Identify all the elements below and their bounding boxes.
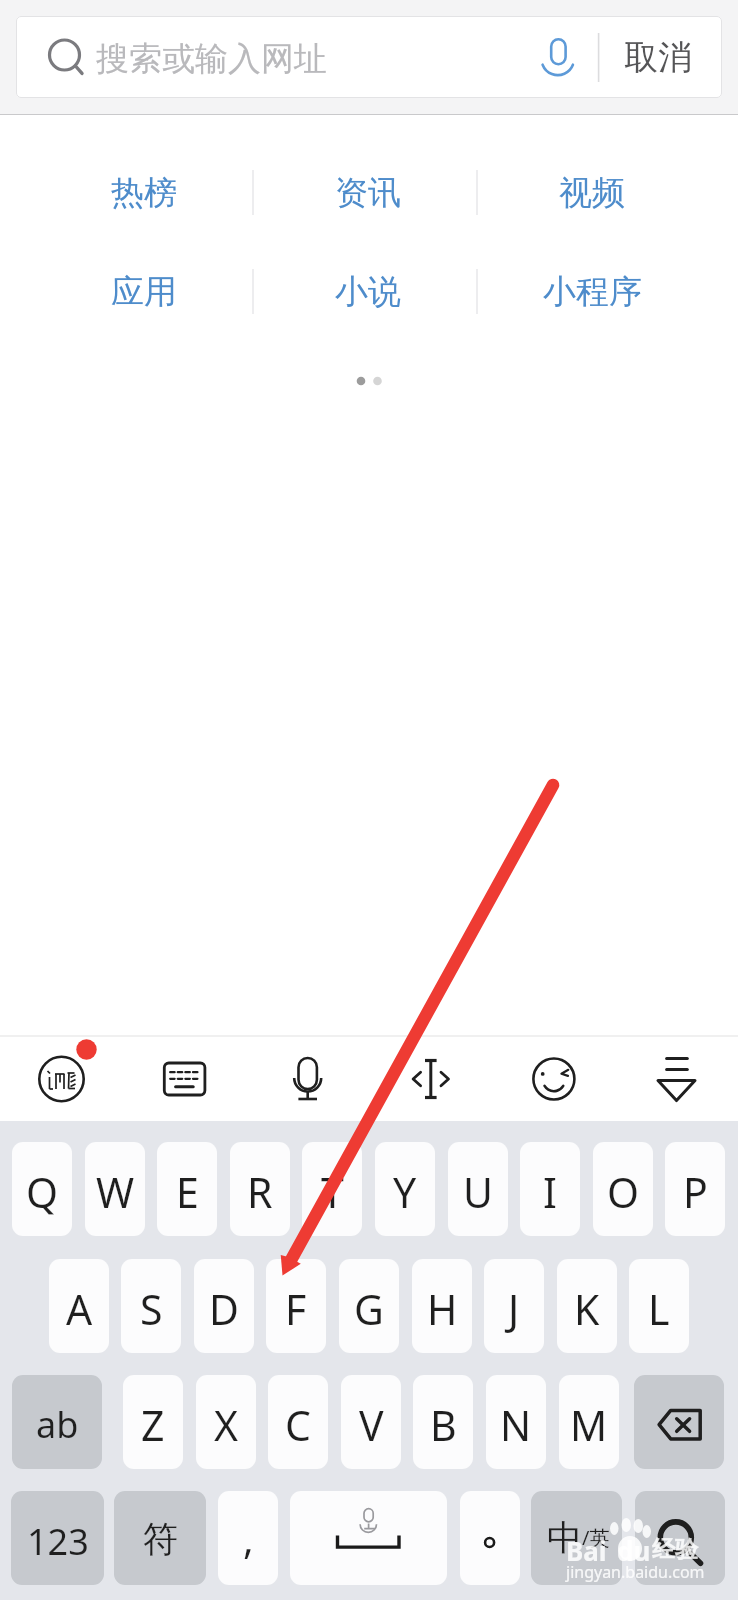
button[interactable]: Z xyxy=(123,1375,183,1469)
button[interactable]: W xyxy=(85,1142,145,1236)
button[interactable]: I xyxy=(520,1142,580,1236)
staticText: X xyxy=(214,1397,239,1453)
button[interactable]: L xyxy=(629,1259,689,1353)
button[interactable]: ab xyxy=(12,1375,102,1469)
staticText: L xyxy=(648,1281,670,1337)
button[interactable]: Q xyxy=(12,1142,72,1236)
button[interactable]: Keyboard xyxy=(143,1038,227,1120)
staticText: /英 xyxy=(582,1524,610,1551)
staticText: 热榜 xyxy=(111,172,177,214)
button[interactable]: K xyxy=(557,1259,617,1353)
staticText: R xyxy=(247,1164,273,1220)
button[interactable]: J xyxy=(484,1259,544,1353)
staticText: 取消 xyxy=(624,36,692,79)
button[interactable]: S xyxy=(121,1259,181,1353)
staticText: H xyxy=(427,1281,458,1337)
button[interactable]: 搜索或输入网址 xyxy=(16,16,722,98)
staticText: jingyan.baidu.com xyxy=(566,1561,705,1583)
button[interactable]: F xyxy=(266,1259,326,1353)
button[interactable]: Hide keyboard xyxy=(635,1038,719,1120)
staticText: 中 xyxy=(547,1516,582,1560)
button[interactable]: Y xyxy=(375,1142,435,1236)
staticText: F xyxy=(285,1281,307,1337)
button[interactable]: 视频 xyxy=(480,162,704,224)
button[interactable]: H xyxy=(412,1259,472,1353)
button[interactable]: 取消 xyxy=(599,16,716,98)
staticText: 应用 xyxy=(111,271,177,313)
staticText: ab xyxy=(36,1400,79,1449)
staticText: D xyxy=(209,1281,239,1337)
button[interactable]: T xyxy=(302,1142,362,1236)
staticText: A xyxy=(66,1281,93,1337)
button[interactable]: Search xyxy=(635,1491,725,1585)
button[interactable]: U xyxy=(448,1142,508,1236)
staticText: N xyxy=(500,1397,532,1453)
button[interactable]: 资讯 xyxy=(256,162,480,224)
button[interactable]: N xyxy=(486,1375,546,1469)
button[interactable]: Voice input xyxy=(266,1038,350,1120)
staticText: 经验 xyxy=(652,1535,698,1564)
staticText: 搜索或输入网址 xyxy=(96,38,327,80)
staticText: K xyxy=(574,1281,600,1337)
staticText: Q xyxy=(26,1164,59,1220)
staticText: M xyxy=(570,1397,608,1453)
button[interactable]: Voice search xyxy=(524,16,592,98)
staticText: W xyxy=(96,1164,135,1220)
staticText: T xyxy=(321,1164,344,1220)
button[interactable]: 小程序 xyxy=(480,261,704,323)
button[interactable]: 符 xyxy=(114,1491,206,1585)
staticText: 视频 xyxy=(559,172,625,214)
button[interactable]: P xyxy=(665,1142,725,1236)
button[interactable]: , xyxy=(218,1491,278,1585)
button[interactable]: 小说 xyxy=(256,261,480,323)
staticText: Bai xyxy=(566,1533,607,1568)
button[interactable]: A xyxy=(49,1259,109,1353)
staticText: 资讯 xyxy=(335,172,401,214)
button[interactable]: C xyxy=(268,1375,328,1469)
staticText: 符 xyxy=(143,1517,178,1561)
button[interactable]: Emoji xyxy=(512,1038,596,1120)
staticText: I xyxy=(543,1164,557,1220)
button[interactable]: E xyxy=(157,1142,217,1236)
staticText: O xyxy=(607,1164,640,1220)
button[interactable]: O xyxy=(593,1142,653,1236)
staticText: P xyxy=(683,1164,708,1220)
staticText: Z xyxy=(141,1397,165,1453)
staticText: J xyxy=(508,1281,520,1337)
staticText: , xyxy=(243,1511,254,1565)
button[interactable]: Backspace xyxy=(634,1375,724,1469)
staticText: 小说 xyxy=(335,271,401,313)
staticText: E xyxy=(176,1164,199,1220)
staticText: G xyxy=(354,1281,384,1337)
button[interactable]: Period xyxy=(460,1491,520,1585)
staticText: 123 xyxy=(27,1517,89,1566)
staticText: U xyxy=(463,1164,493,1220)
button[interactable]: G xyxy=(339,1259,399,1353)
staticText: C xyxy=(285,1397,311,1453)
staticText: 小程序 xyxy=(543,271,642,313)
staticText: V xyxy=(359,1397,384,1453)
staticText: Y xyxy=(393,1164,417,1220)
button[interactable]: 中 xyxy=(531,1491,622,1585)
staticText: S xyxy=(140,1281,163,1337)
button[interactable]: Input method xyxy=(20,1038,104,1120)
button[interactable]: X xyxy=(196,1375,256,1469)
button[interactable]: 123 xyxy=(11,1491,104,1585)
button[interactable]: Cursor control xyxy=(389,1038,473,1120)
button[interactable]: V xyxy=(341,1375,401,1469)
button[interactable]: Space xyxy=(290,1491,447,1585)
button[interactable]: D xyxy=(194,1259,254,1353)
staticText: du xyxy=(617,1533,651,1568)
button[interactable]: B xyxy=(413,1375,473,1469)
button[interactable]: 热榜 xyxy=(32,162,256,224)
button[interactable]: 应用 xyxy=(32,261,256,323)
button[interactable]: M xyxy=(559,1375,619,1469)
button[interactable]: R xyxy=(230,1142,290,1236)
staticText: B xyxy=(430,1397,457,1453)
